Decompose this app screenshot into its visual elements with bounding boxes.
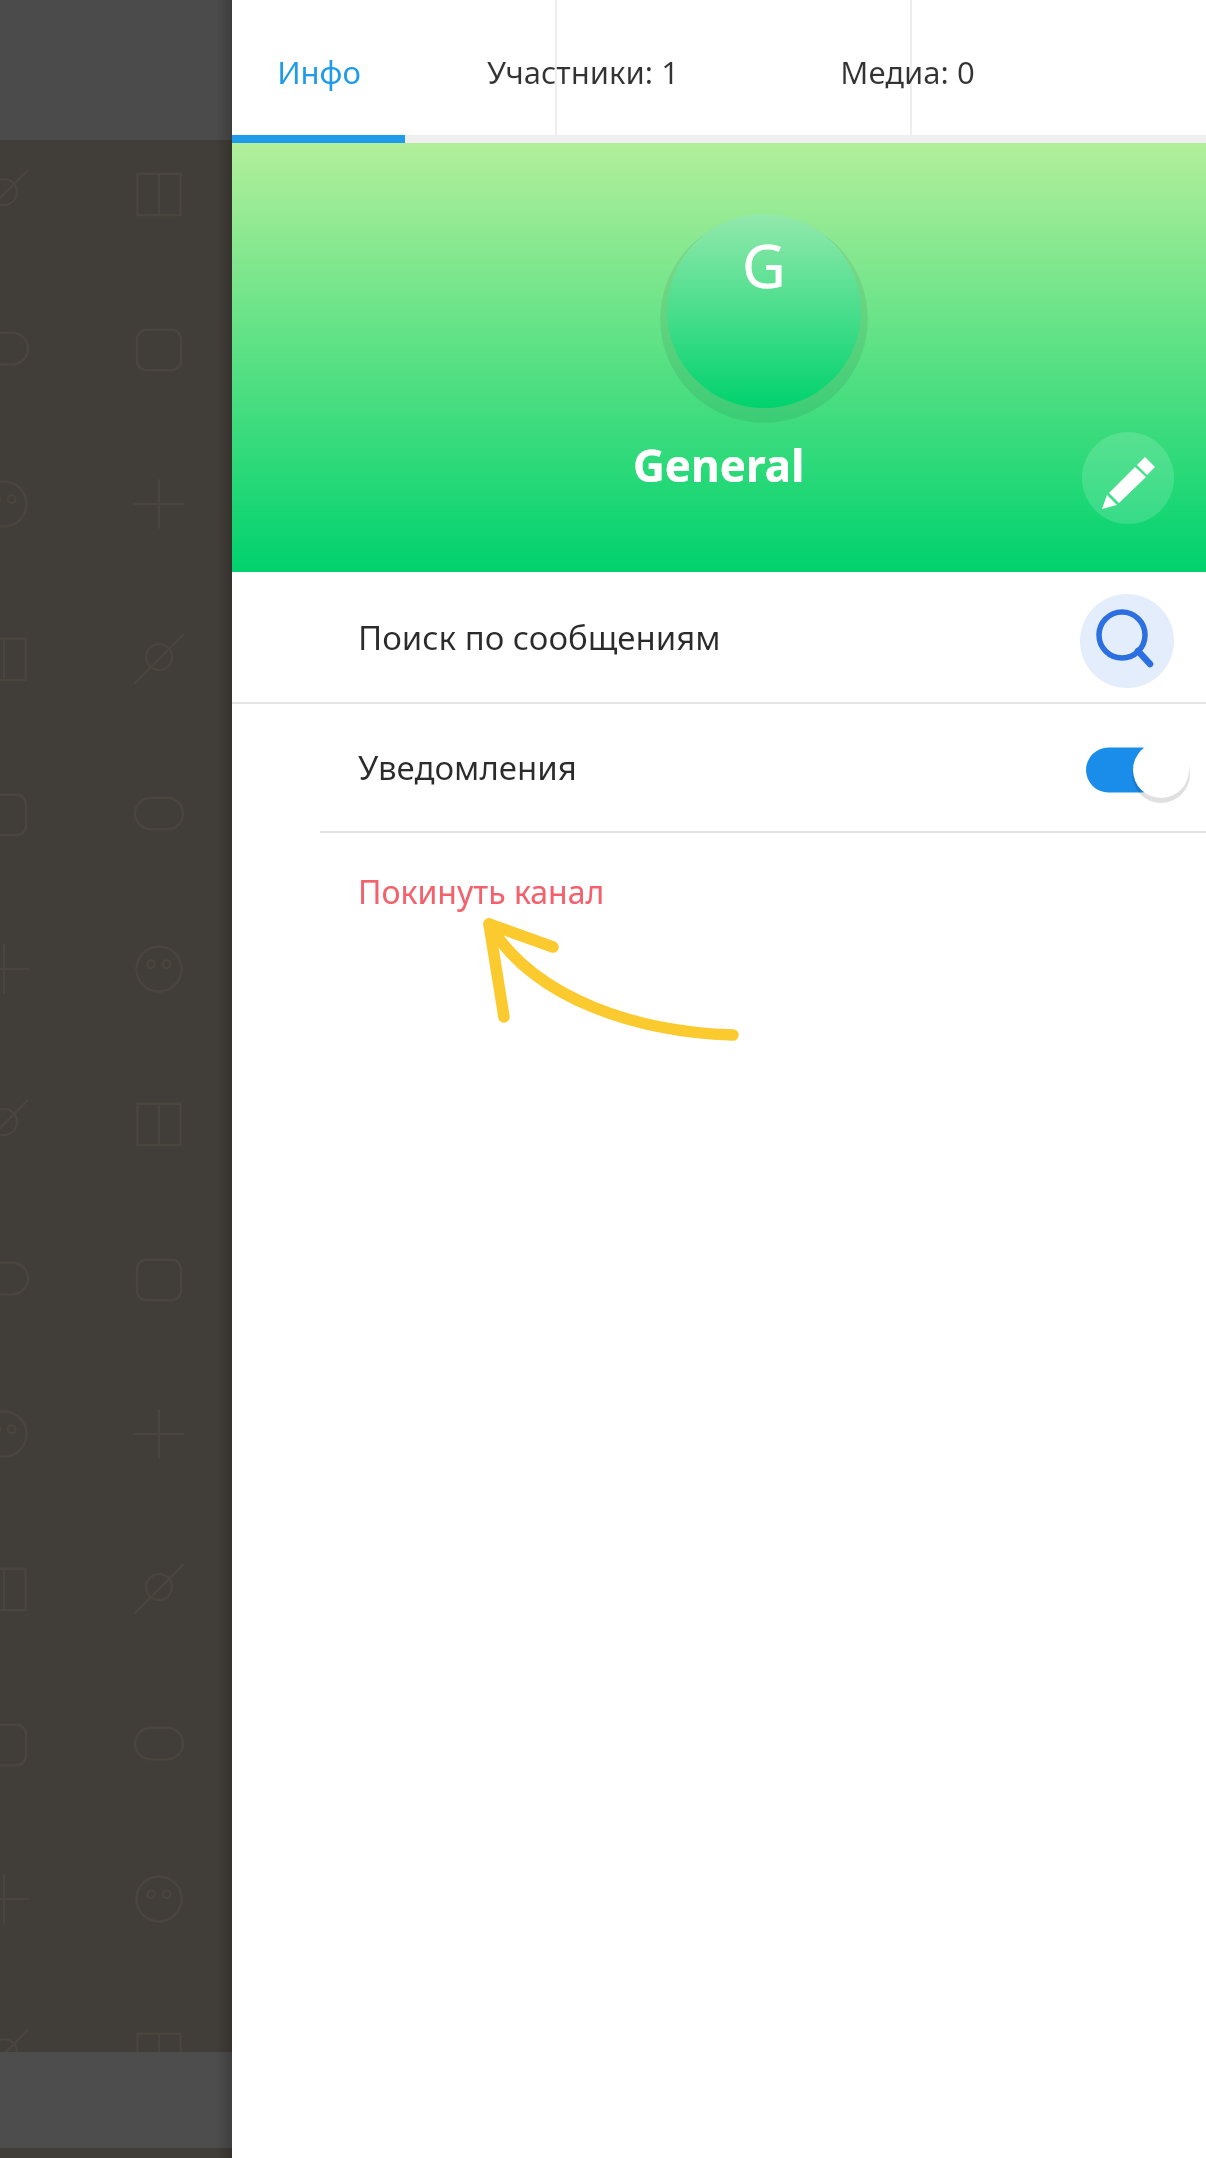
button[interactable]: Поиск по сообщениям: [232, 572, 1206, 703]
button[interactable]: G: [667, 168, 861, 362]
staticText: Уведомления: [358, 745, 577, 790]
button[interactable]: Инфо: [232, 0, 405, 143]
staticText: General: [633, 435, 805, 495]
staticText: Участники: 1: [487, 51, 679, 93]
staticText: G: [742, 224, 786, 306]
staticText: Инфо: [277, 51, 361, 93]
staticText: Покинуть канал: [358, 870, 605, 914]
staticText: Поиск по сообщениям: [358, 615, 721, 660]
button[interactable]: Уведомления: [232, 703, 1206, 832]
button[interactable]: Медиа: 0: [760, 0, 1055, 143]
staticText: Медиа: 0: [840, 51, 975, 93]
button[interactable]: Участники: 1: [405, 0, 760, 143]
button[interactable]: Редактировать: [1082, 432, 1174, 524]
button[interactable]: Покинуть канал: [232, 832, 1206, 952]
